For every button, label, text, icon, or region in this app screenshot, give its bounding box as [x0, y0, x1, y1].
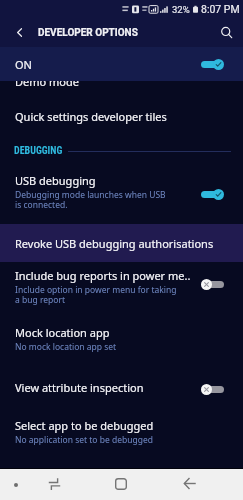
staticText: Revoke USB debugging authorisations [15, 236, 214, 251]
button[interactable]: Include bug reports in power me.. [0, 263, 243, 311]
button[interactable]: Revoke USB debugging authorisations [0, 224, 243, 262]
staticText: ON [15, 57, 32, 72]
staticText: Demo mode [15, 74, 79, 89]
staticText: 8:07 PM [201, 3, 240, 15]
staticText: Include bug reports in power me.. [15, 268, 195, 283]
button[interactable]: Navigate up [0, 18, 38, 47]
button[interactable]: Home [107, 468, 135, 499]
staticText: Select app to be debugged [15, 418, 154, 433]
staticText: No application set to be debugged [15, 434, 153, 446]
staticText: No mock location app set [15, 341, 117, 353]
staticText: DEBUGGING [14, 145, 63, 157]
staticText: Debugging mode launches when USB is conn… [15, 189, 167, 210]
button[interactable]: Quick settings developer tiles [0, 97, 243, 135]
button[interactable]: Select app to be debugged [0, 413, 243, 453]
staticText: USB debugging [15, 173, 96, 188]
button[interactable]: Back [175, 468, 203, 499]
button[interactable]: ON [0, 47, 243, 81]
button[interactable]: Recent apps [40, 468, 68, 499]
staticText: Include option in power menu for taking … [15, 284, 183, 305]
staticText: Quick settings developer tiles [15, 109, 167, 124]
button[interactable]: Mock location app [0, 320, 243, 360]
staticText: View attribute inspection [15, 380, 144, 395]
button[interactable]: USB debugging [0, 168, 243, 212]
staticText: DEVELOPER OPTIONS [38, 27, 138, 39]
staticText: Mock location app [15, 325, 110, 340]
button[interactable]: View attribute inspection [0, 375, 243, 405]
staticText: 32% [172, 4, 190, 15]
button[interactable]: Search [209, 18, 243, 47]
button[interactable]: Demo mode [0, 62, 243, 100]
button[interactable]: Show keyboard [4, 469, 28, 500]
